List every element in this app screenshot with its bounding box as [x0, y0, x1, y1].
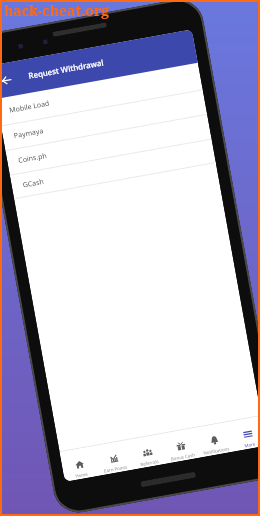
- staticText: Notifications: [202, 445, 230, 456]
- staticText: Coins.ph: [18, 151, 48, 166]
- button[interactable]: Paymaya: [1, 90, 207, 150]
- button[interactable]: GCash: [10, 139, 216, 198]
- staticText: More: [244, 441, 256, 448]
- staticText: Referrals: [139, 458, 159, 467]
- button[interactable]: Referrals: [128, 434, 166, 470]
- staticText: Home: [75, 471, 88, 479]
- button[interactable]: Mobile Load: [0, 63, 203, 126]
- button[interactable]: More: [228, 416, 260, 451]
- button[interactable]: Coins.ph: [5, 115, 211, 175]
- staticText: Request Withdrawal: [28, 57, 104, 82]
- button[interactable]: Bonus Cash: [161, 428, 200, 463]
- button[interactable]: Back: [0, 61, 23, 99]
- button[interactable]: Notifications: [194, 422, 233, 457]
- staticText: Earn Points: [103, 464, 128, 474]
- staticText: Paymaya: [13, 126, 44, 141]
- staticText: Mobile Load: [8, 99, 51, 116]
- button[interactable]: Home: [60, 446, 99, 482]
- button[interactable]: Earn Points: [94, 440, 133, 476]
- staticText: GCash: [22, 177, 45, 190]
- staticText: Bonus Cash: [170, 451, 196, 462]
- staticText: hack-cheat.org: [4, 1, 110, 20]
